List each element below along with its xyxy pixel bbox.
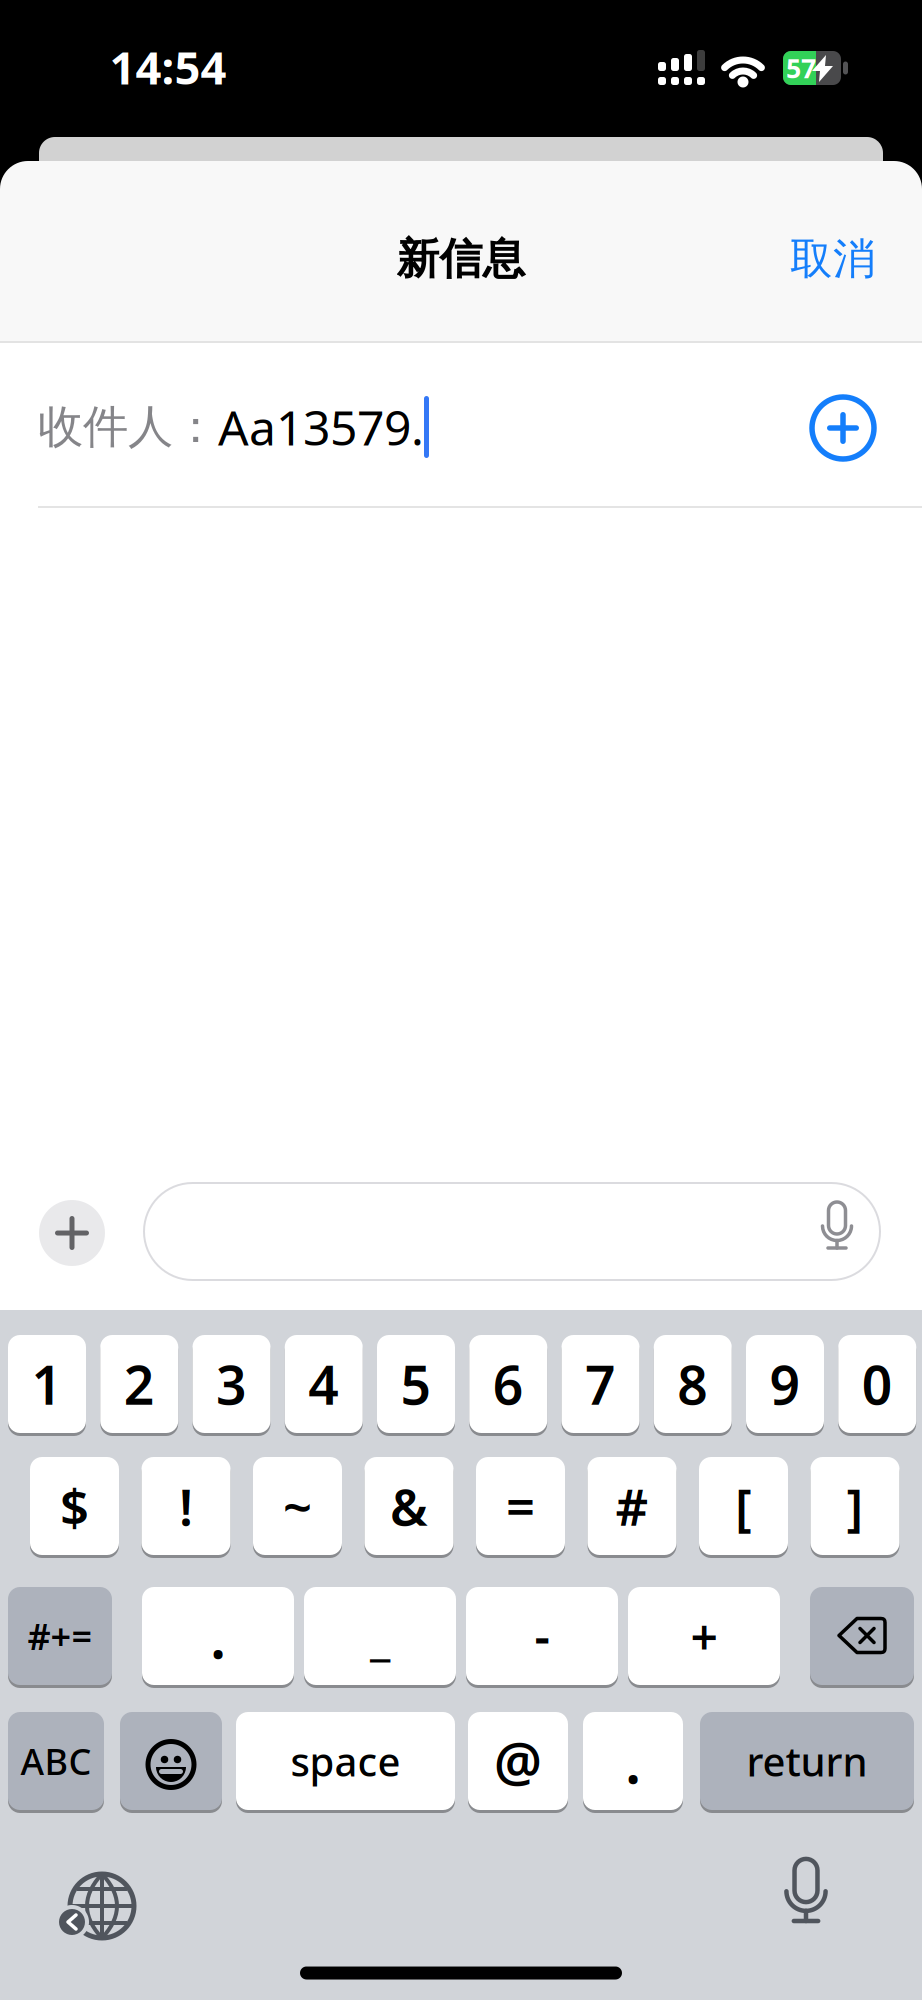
staticText: 4	[308, 1349, 339, 1419]
button[interactable]: .	[142, 1585, 294, 1686]
staticText: 3	[216, 1349, 247, 1419]
button[interactable]: [	[699, 1455, 788, 1556]
button[interactable]: +	[628, 1585, 780, 1686]
staticText: space	[290, 1734, 400, 1787]
staticText: 2	[124, 1349, 155, 1419]
staticText: 6	[493, 1349, 524, 1419]
button[interactable]: _	[304, 1585, 456, 1686]
staticText: 取消	[790, 233, 876, 285]
button[interactable]: ]	[810, 1455, 899, 1556]
staticText: 57	[786, 50, 816, 86]
button[interactable]: !	[141, 1455, 230, 1556]
staticText: 新信息	[396, 233, 525, 285]
button[interactable]: #+=	[8, 1585, 112, 1686]
button[interactable]: 2	[100, 1333, 178, 1434]
button[interactable]: -	[466, 1585, 618, 1686]
button[interactable]: &	[364, 1455, 453, 1556]
button[interactable]	[52, 1858, 142, 1948]
button[interactable]: 9	[746, 1333, 824, 1434]
staticText: ~	[283, 1472, 312, 1540]
staticText: ]	[846, 1472, 863, 1540]
staticText: Aa13579.	[218, 395, 424, 459]
staticText: 14:54	[109, 37, 226, 97]
button[interactable]: 5	[377, 1333, 455, 1434]
button[interactable]: 0	[838, 1333, 916, 1434]
button[interactable]	[761, 1858, 851, 1948]
staticText: !	[179, 1472, 193, 1540]
button[interactable]: ~	[253, 1455, 342, 1556]
button[interactable]: =	[476, 1455, 565, 1556]
staticText: return	[746, 1734, 867, 1787]
staticText: 5	[400, 1349, 431, 1419]
staticText: -	[534, 1604, 549, 1668]
staticText: #+=	[27, 1612, 92, 1660]
button[interactable]: #	[587, 1455, 676, 1556]
staticText: 8	[677, 1349, 708, 1419]
staticText: .	[210, 1597, 226, 1675]
staticText: .	[625, 1722, 641, 1800]
button[interactable]	[120, 1710, 222, 1811]
button[interactable]: .	[583, 1710, 683, 1811]
button[interactable]	[810, 395, 876, 461]
button[interactable]	[143, 1182, 881, 1281]
button[interactable]: 6	[469, 1333, 547, 1434]
button[interactable]: 7	[561, 1333, 639, 1434]
button[interactable]: $	[30, 1455, 119, 1556]
button[interactable]	[810, 1585, 914, 1686]
staticText: _	[370, 1604, 390, 1668]
button[interactable]: 1	[8, 1333, 86, 1434]
button[interactable]	[39, 1200, 105, 1266]
button[interactable]: space	[236, 1710, 455, 1811]
staticText: @	[494, 1726, 542, 1796]
staticText: =	[506, 1472, 535, 1540]
button[interactable]: @	[468, 1710, 568, 1811]
staticText: &	[390, 1472, 428, 1540]
staticText: 0	[862, 1349, 893, 1419]
staticText: 7	[585, 1349, 616, 1419]
button[interactable]: ABC	[8, 1710, 104, 1811]
button[interactable]: 8	[654, 1333, 732, 1434]
staticText: +	[690, 1604, 717, 1668]
staticText: 1	[31, 1349, 62, 1419]
staticText: 9	[769, 1349, 800, 1419]
button[interactable]: 4	[285, 1333, 363, 1434]
staticText: [	[735, 1472, 752, 1540]
staticText: 收件人：	[38, 399, 218, 455]
staticText: $	[60, 1472, 89, 1540]
button[interactable]: return	[700, 1710, 914, 1811]
button[interactable]: 取消	[790, 233, 876, 285]
button[interactable]: 3	[192, 1333, 270, 1434]
staticText: #	[615, 1472, 648, 1540]
staticText: ABC	[20, 1737, 91, 1785]
